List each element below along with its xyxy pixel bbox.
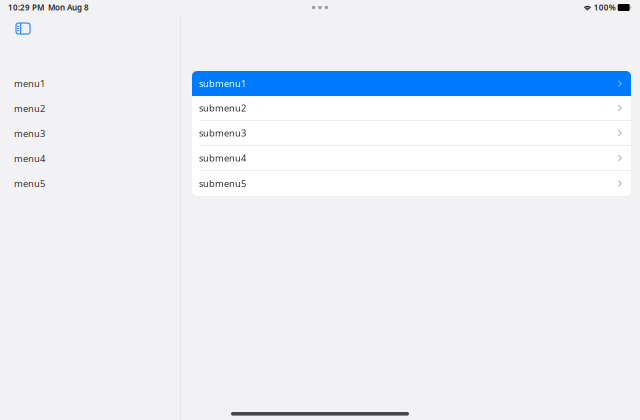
staticText: submenu4 xyxy=(199,152,246,164)
staticText: submenu5 xyxy=(199,177,246,190)
staticText: 100% xyxy=(594,2,616,13)
button[interactable]: submenu3 xyxy=(192,121,631,146)
staticText: menu5 xyxy=(14,177,45,190)
staticText: menu1 xyxy=(14,77,45,90)
button[interactable]: menu5 xyxy=(0,171,180,196)
button[interactable]: submenu2 xyxy=(192,96,631,121)
button[interactable]: submenu1 xyxy=(192,71,631,96)
button[interactable]: menu3 xyxy=(0,121,180,146)
staticText: menu2 xyxy=(14,102,45,115)
staticText: submenu2 xyxy=(199,102,246,114)
button[interactable]: menu4 xyxy=(0,146,180,171)
staticText: 10:29 PM xyxy=(8,2,44,13)
button[interactable]: submenu5 xyxy=(192,171,631,196)
button[interactable]: submenu4 xyxy=(192,146,631,171)
button[interactable]: menu2 xyxy=(0,96,180,121)
staticText: menu4 xyxy=(14,152,45,165)
staticText: submenu3 xyxy=(199,127,246,139)
staticText: submenu1 xyxy=(199,77,246,90)
button[interactable]: menu1 xyxy=(0,71,180,96)
staticText: Mon Aug 8 xyxy=(48,2,89,13)
staticText: menu3 xyxy=(14,127,45,140)
button[interactable]: Toggle Sidebar xyxy=(11,18,35,39)
